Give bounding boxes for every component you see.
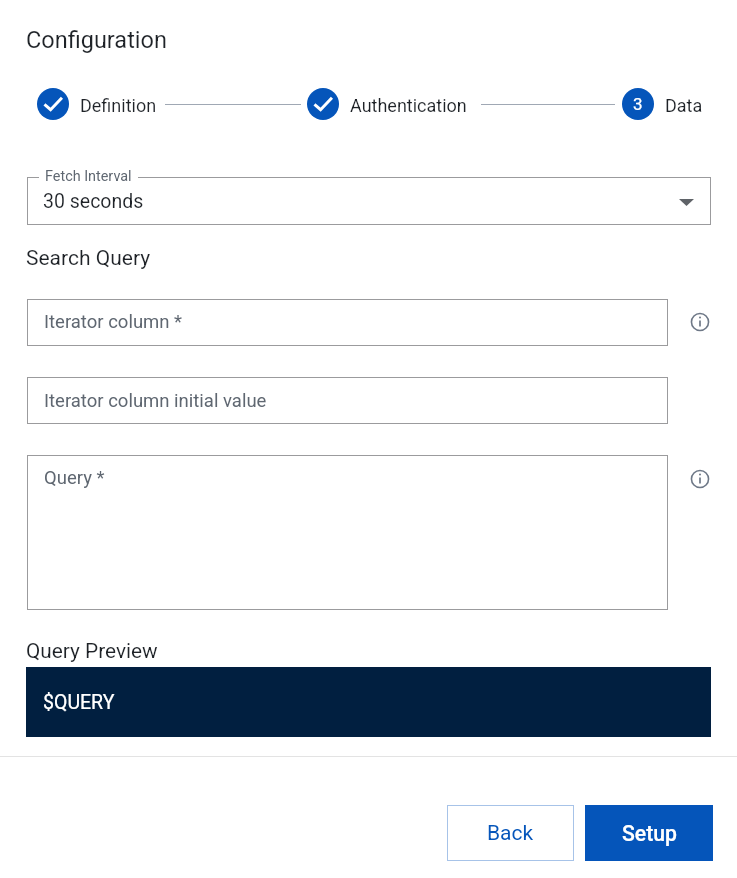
button[interactable]: Query * <box>27 455 668 610</box>
staticText: Iterator column * <box>44 310 183 332</box>
button[interactable]: Fetch Interval <box>27 177 711 225</box>
staticText: Fetch Interval <box>45 167 132 183</box>
staticText: 30 seconds <box>43 189 144 212</box>
button[interactable]: More information <box>690 469 710 489</box>
staticText: Data <box>665 95 703 117</box>
staticText: Authentication <box>350 95 467 117</box>
button[interactable]: 3 <box>622 88 703 120</box>
other: Open fetch interval menu <box>679 199 694 206</box>
button[interactable]: Setup <box>585 805 713 861</box>
button[interactable]: Iterator column * <box>27 299 668 346</box>
staticText: Definition <box>80 95 157 117</box>
staticText: Back <box>487 820 534 845</box>
button[interactable]: Back <box>447 805 574 861</box>
button[interactable]: Iterator column initial value <box>27 377 668 424</box>
button[interactable]: More information <box>690 312 710 332</box>
staticText: Query Preview <box>26 638 158 663</box>
button[interactable]: Authentication <box>307 88 467 120</box>
staticText: $QUERY <box>43 690 115 713</box>
button[interactable]: Definition <box>37 88 157 120</box>
staticText: Query * <box>44 466 105 488</box>
staticText: Search Query <box>26 245 151 270</box>
staticText: Configuration <box>26 26 167 54</box>
staticText: Setup <box>622 821 677 846</box>
staticText: Iterator column initial value <box>44 389 267 411</box>
staticText: 3 <box>633 94 643 114</box>
